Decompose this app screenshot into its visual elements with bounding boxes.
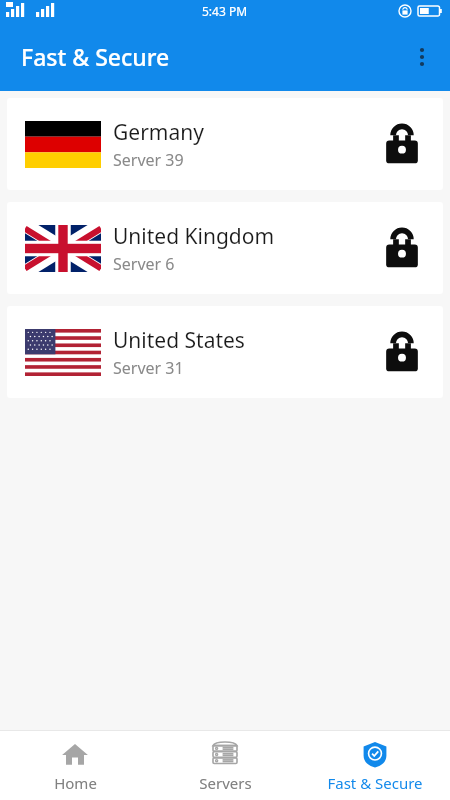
- button[interactable]: Home: [0, 733, 150, 799]
- button[interactable]: More options: [402, 37, 442, 77]
- staticText: United Kingdom: [113, 222, 275, 251]
- staticText: Servers: [199, 773, 252, 793]
- staticText: United States: [113, 326, 245, 355]
- staticText: Home: [54, 773, 97, 793]
- staticText: Server 31: [113, 357, 184, 379]
- button[interactable]: United States: [7, 306, 443, 398]
- staticText: 5:43 PM: [202, 3, 248, 19]
- button[interactable]: Servers: [150, 733, 300, 799]
- staticText: Server 39: [113, 149, 184, 171]
- button[interactable]: United Kingdom: [7, 202, 443, 294]
- staticText: Fast & Secure: [327, 773, 423, 793]
- button[interactable]: Germany: [7, 98, 443, 190]
- button[interactable]: Fast & Secure: [300, 733, 450, 799]
- staticText: Server 6: [113, 253, 175, 275]
- staticText: Fast & Secure: [21, 41, 170, 72]
- staticText: Germany: [113, 118, 204, 147]
